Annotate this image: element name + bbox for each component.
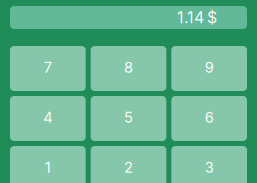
- staticText: 1.14 $: [177, 8, 217, 27]
- staticText: 5: [124, 109, 133, 126]
- button[interactable]: 5: [91, 96, 166, 141]
- staticText: 2: [124, 159, 133, 176]
- button[interactable]: 7: [10, 46, 86, 91]
- button[interactable]: 3: [171, 146, 247, 183]
- staticText: 8: [124, 59, 133, 76]
- button[interactable]: 6: [171, 96, 247, 141]
- staticText: 6: [205, 109, 214, 126]
- staticText: 9: [205, 59, 214, 76]
- button[interactable]: 4: [10, 96, 86, 141]
- staticText: 1: [45, 159, 51, 176]
- staticText: 3: [205, 159, 214, 176]
- staticText: 7: [44, 59, 52, 76]
- button[interactable]: 8: [91, 46, 166, 91]
- button[interactable]: 2: [91, 146, 166, 183]
- button[interactable]: 9: [171, 46, 247, 91]
- button[interactable]: 1: [10, 146, 86, 183]
- staticText: 4: [43, 109, 52, 126]
